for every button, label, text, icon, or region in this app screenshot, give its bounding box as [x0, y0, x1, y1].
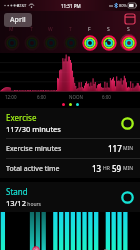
button[interactable]: Exercise minutes: [0, 139, 140, 158]
staticText: 12:00: [5, 94, 17, 100]
staticText: 117: [108, 143, 122, 154]
staticText: 80%: [119, 3, 127, 8]
staticText: S: [127, 26, 130, 33]
staticText: 11:31 PM: [61, 3, 81, 9]
staticText: Exercise minutes: [6, 144, 62, 154]
staticText: hours: [26, 201, 41, 208]
button[interactable]: T: [62, 26, 79, 51]
staticText: HR: [103, 165, 110, 172]
staticText: F: [88, 26, 91, 33]
button[interactable]: T: [23, 26, 40, 51]
staticText: 59: [112, 163, 122, 174]
staticText: 13: [92, 163, 102, 174]
staticText: April: [10, 15, 26, 25]
staticText: 6:00: [37, 94, 46, 100]
staticText: 6:00: [102, 94, 111, 100]
staticText: T: [30, 26, 33, 33]
button[interactable]: Total active time: [0, 159, 140, 178]
button[interactable]: W: [42, 26, 59, 51]
button[interactable]: Exercise: [0, 108, 140, 138]
staticText: Stand: [6, 186, 28, 197]
staticText: 117/30 minutes: [6, 124, 61, 134]
button[interactable]: S: [120, 26, 137, 51]
staticText: S: [107, 26, 110, 33]
staticText: NOON: [69, 94, 83, 100]
button[interactable]: F: [81, 26, 98, 51]
staticText: M: [9, 26, 14, 33]
staticText: W: [48, 26, 53, 33]
staticText: Exercise: [6, 112, 37, 123]
staticText: T: [69, 26, 72, 33]
staticText: 13/12: [6, 198, 26, 208]
button[interactable]: Calendar: [124, 13, 136, 25]
button[interactable]: M: [3, 26, 20, 51]
staticText: Total active time: [6, 164, 60, 174]
staticText: MIN: [123, 145, 134, 152]
button[interactable]: Stand: [0, 182, 140, 212]
staticText: AT&T: [17, 3, 27, 8]
button[interactable]: April: [4, 13, 32, 27]
button[interactable]: S: [100, 26, 117, 51]
staticText: MIN: [123, 165, 134, 172]
